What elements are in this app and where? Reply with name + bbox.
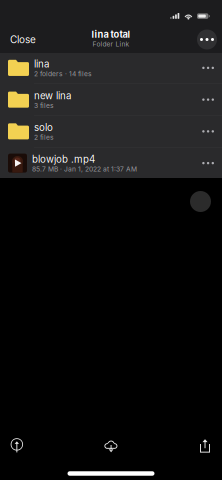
staticText: Folder Link	[92, 40, 129, 48]
staticText: 85.7 MB · Jan 1, 2022 at 1:37 AM	[32, 165, 137, 173]
button[interactable]: More options	[192, 25, 222, 53]
button[interactable]: blowjob .mp4	[0, 147, 222, 179]
button[interactable]: Close	[0, 26, 44, 53]
button[interactable]: Share	[188, 431, 222, 461]
button[interactable]: new lina	[0, 84, 222, 115]
staticText: 2 folders · 14 files	[34, 70, 92, 78]
button[interactable]: solo	[0, 116, 222, 147]
staticText: lina total	[91, 29, 130, 40]
staticText: blowjob .mp4	[32, 153, 95, 165]
button[interactable]: Download	[94, 431, 128, 461]
staticText: solo	[34, 121, 53, 133]
staticText: new lina	[34, 90, 71, 101]
staticText: 3 files	[34, 101, 54, 110]
staticText: 2 files	[34, 133, 54, 141]
staticText: lina	[34, 58, 49, 70]
button[interactable]: Save to files	[0, 431, 34, 461]
button[interactable]: lina	[0, 52, 222, 83]
staticText: Close	[10, 33, 36, 46]
button[interactable]: Close player	[186, 187, 215, 216]
